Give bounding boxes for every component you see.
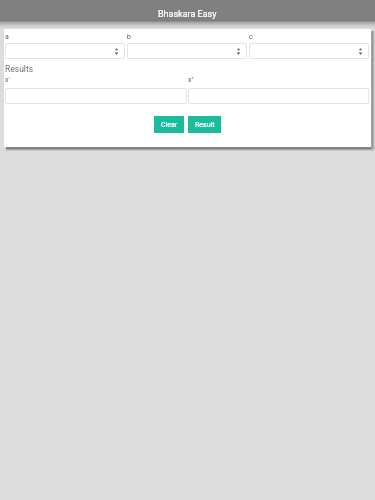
button[interactable]: Second root x″ <box>188 88 369 104</box>
staticText: Clear <box>161 121 178 129</box>
staticText: Result <box>195 121 215 129</box>
button[interactable]: Clear <box>154 116 184 133</box>
button[interactable]: Coefficient c <box>249 43 369 59</box>
staticText: b <box>127 33 131 41</box>
button[interactable]: Result <box>188 116 221 133</box>
staticText: x' <box>5 76 10 84</box>
staticText: x'' <box>188 76 194 84</box>
button[interactable]: Coefficient b <box>127 43 247 59</box>
staticText: c <box>249 33 253 41</box>
staticText: Results <box>5 64 34 74</box>
button[interactable]: Coefficient a <box>5 43 125 59</box>
staticText: a <box>5 33 9 41</box>
button[interactable]: First root x′ <box>5 88 187 104</box>
staticText: Bhaskara Easy <box>158 9 217 20</box>
